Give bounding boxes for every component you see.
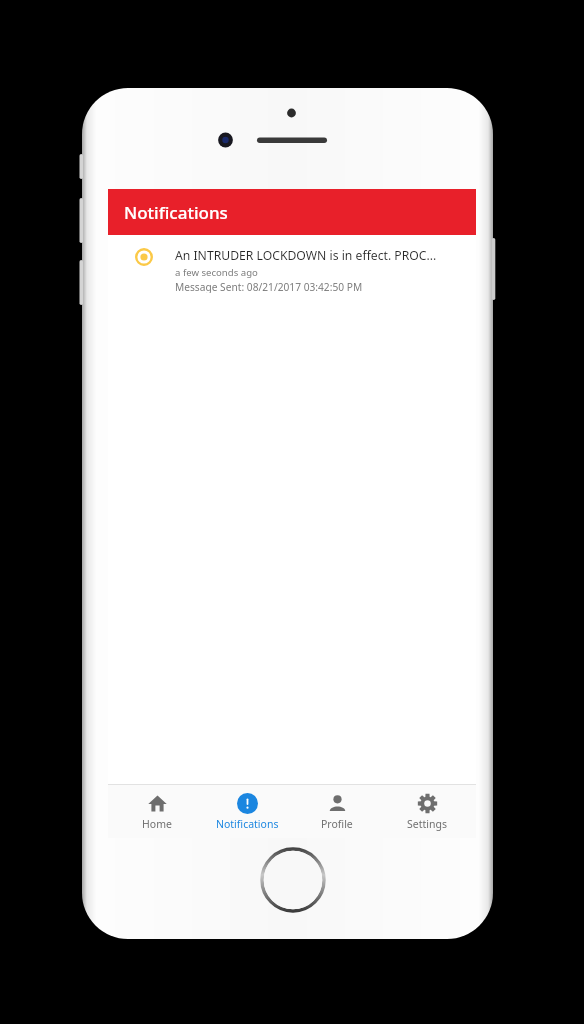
staticText: Notifications [124, 201, 228, 224]
button[interactable]: Notifications [206, 785, 288, 838]
staticText: Home [142, 817, 172, 831]
staticText: Notifications [216, 817, 279, 831]
staticText: a few seconds ago [175, 266, 258, 279]
button[interactable]: Settings [386, 785, 468, 838]
button[interactable]: Notifications [108, 189, 476, 235]
button[interactable]: Profile [296, 785, 378, 838]
staticText: Settings [407, 817, 447, 831]
staticText: Message Sent: 08/21/2017 03:42:50 PM [175, 280, 363, 293]
staticText: Profile [321, 817, 353, 831]
button[interactable]: An INTRUDER LOCKDOWN is in effect. PROC.… [108, 235, 476, 293]
button[interactable]: Home [116, 785, 198, 838]
button[interactable]: Home button [260, 847, 326, 913]
staticText: An INTRUDER LOCKDOWN is in effect. PROC.… [175, 247, 437, 264]
